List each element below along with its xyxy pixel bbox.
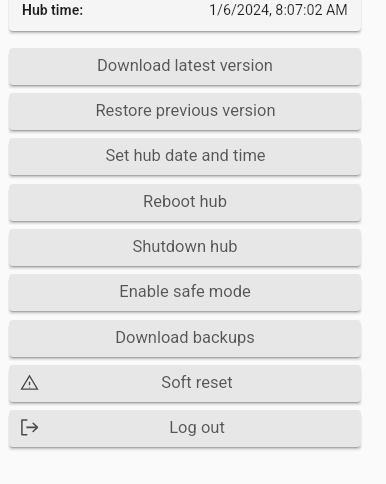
staticText: Soft reset (161, 373, 233, 392)
staticText: Restore previous version (95, 101, 276, 120)
staticText: Download latest version (97, 56, 273, 75)
staticText: 1/6/2024, 8:07:02 AM (209, 2, 348, 19)
other: Log out (21, 419, 38, 439)
staticText: Enable safe mode (119, 282, 251, 301)
other: Warning (21, 376, 38, 392)
button[interactable]: Restore previous version (9, 93, 361, 130)
button[interactable]: Set hub date and time (9, 138, 361, 175)
button[interactable]: Enable safe mode (9, 274, 361, 311)
button[interactable]: Log out (9, 410, 361, 447)
staticText: Reboot hub (143, 192, 227, 211)
button[interactable]: Reboot hub (9, 184, 361, 221)
staticText: Log out (169, 418, 225, 437)
button[interactable]: Download latest version (9, 48, 361, 85)
button[interactable]: Download backups (9, 320, 361, 357)
button[interactable]: Shutdown hub (9, 229, 361, 266)
staticText: Download backups (115, 328, 255, 347)
staticText: Set hub date and time (105, 146, 266, 165)
staticText: Hub time: (22, 2, 84, 18)
staticText: Shutdown hub (132, 237, 238, 256)
button[interactable]: Warning (9, 365, 361, 402)
button[interactable]: Hub time: (9, 0, 361, 31)
